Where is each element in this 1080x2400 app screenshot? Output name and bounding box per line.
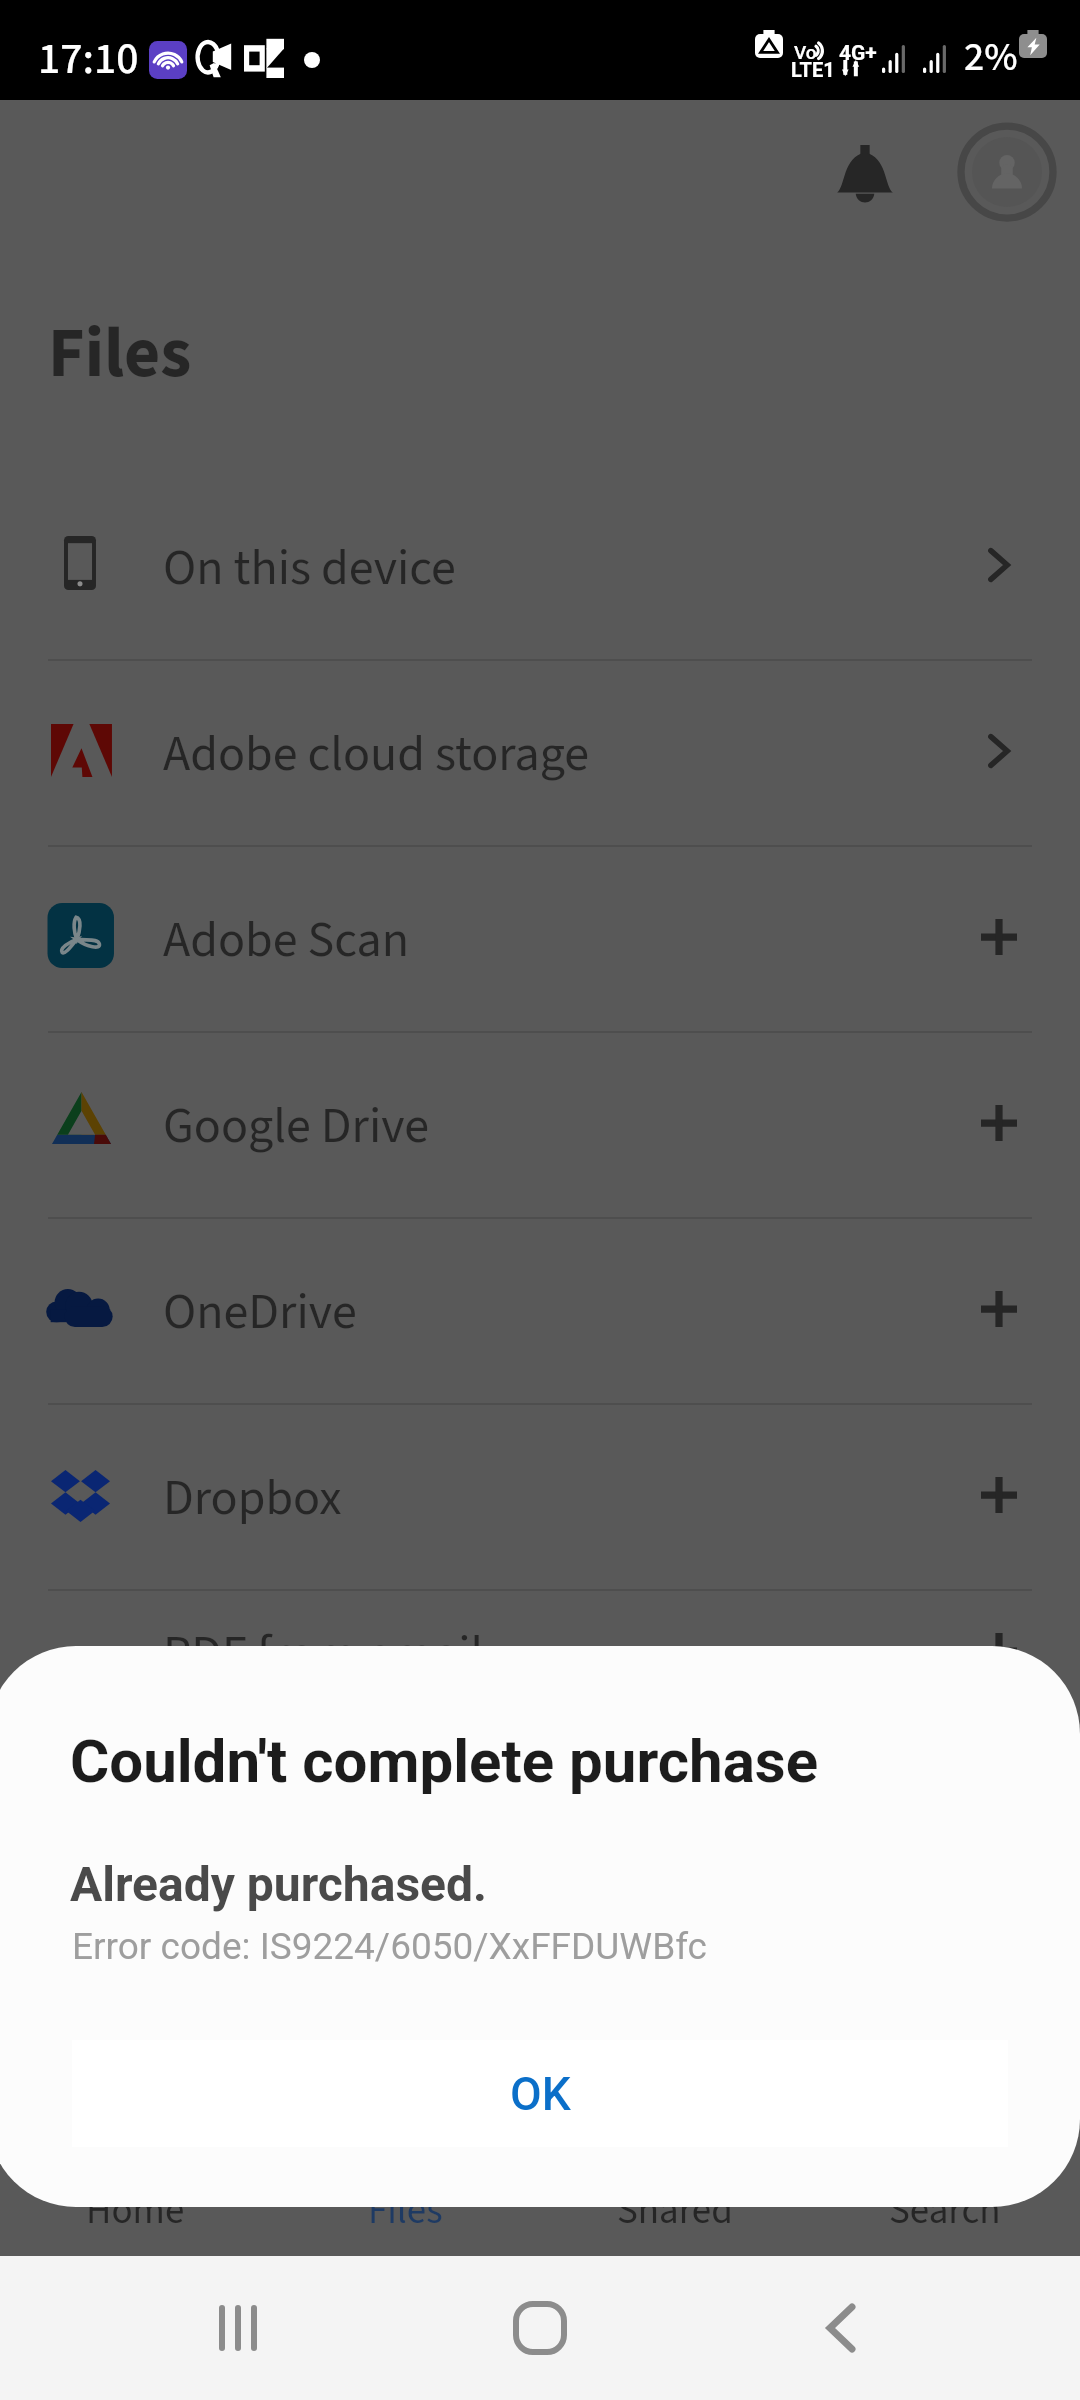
staticText: 17:10 (38, 28, 139, 91)
staticText: Google Drive (163, 1091, 430, 1162)
button[interactable]: Recent apps (178, 2268, 298, 2388)
button[interactable]: Search (810, 2151, 1080, 2271)
staticText: Files (48, 304, 192, 404)
button[interactable]: OneDrive (0, 1217, 1080, 1403)
staticText: Adobe cloud storage (163, 719, 589, 790)
button[interactable]: Notifications (810, 117, 920, 227)
button[interactable]: Dropbox (0, 1403, 1080, 1589)
staticText: OneDrive (163, 1277, 357, 1348)
button[interactable]: Google Drive (0, 1031, 1080, 1217)
staticText: 4G+ (839, 41, 877, 66)
staticText: Vo (794, 41, 817, 63)
staticText: Adobe Scan (163, 905, 409, 976)
button[interactable]: On this device (0, 473, 1080, 659)
staticText: Already purchased. (70, 1856, 487, 1912)
staticText: Home (86, 2183, 185, 2239)
button[interactable]: Files (270, 2151, 540, 2271)
staticText: On this device (163, 533, 456, 604)
button[interactable]: PDF from email (0, 1559, 1080, 1745)
staticText: Dropbox (163, 1463, 342, 1534)
button[interactable]: Profile (952, 117, 1062, 227)
button[interactable]: Home (480, 2268, 600, 2388)
staticText: OK (510, 2067, 571, 2121)
staticText: LTE1 (791, 58, 835, 81)
button[interactable]: OK (72, 2040, 1008, 2147)
staticText: Files (368, 2183, 443, 2239)
button[interactable]: Adobe Scan (0, 845, 1080, 1031)
staticText: Error code: IS9224/6050/XxFFDUWBfc (72, 1925, 707, 1968)
button[interactable]: Adobe cloud storage (0, 659, 1080, 845)
staticText: Couldn't complete purchase (70, 1726, 819, 1796)
staticText: 2% (964, 29, 1018, 86)
button[interactable]: Back (782, 2268, 902, 2388)
staticText: Search (889, 2183, 1001, 2239)
button[interactable]: Home (0, 2151, 270, 2271)
staticText: PDF from email (163, 1619, 484, 1690)
staticText: Shared (617, 2183, 733, 2239)
button[interactable]: Shared (540, 2151, 810, 2271)
